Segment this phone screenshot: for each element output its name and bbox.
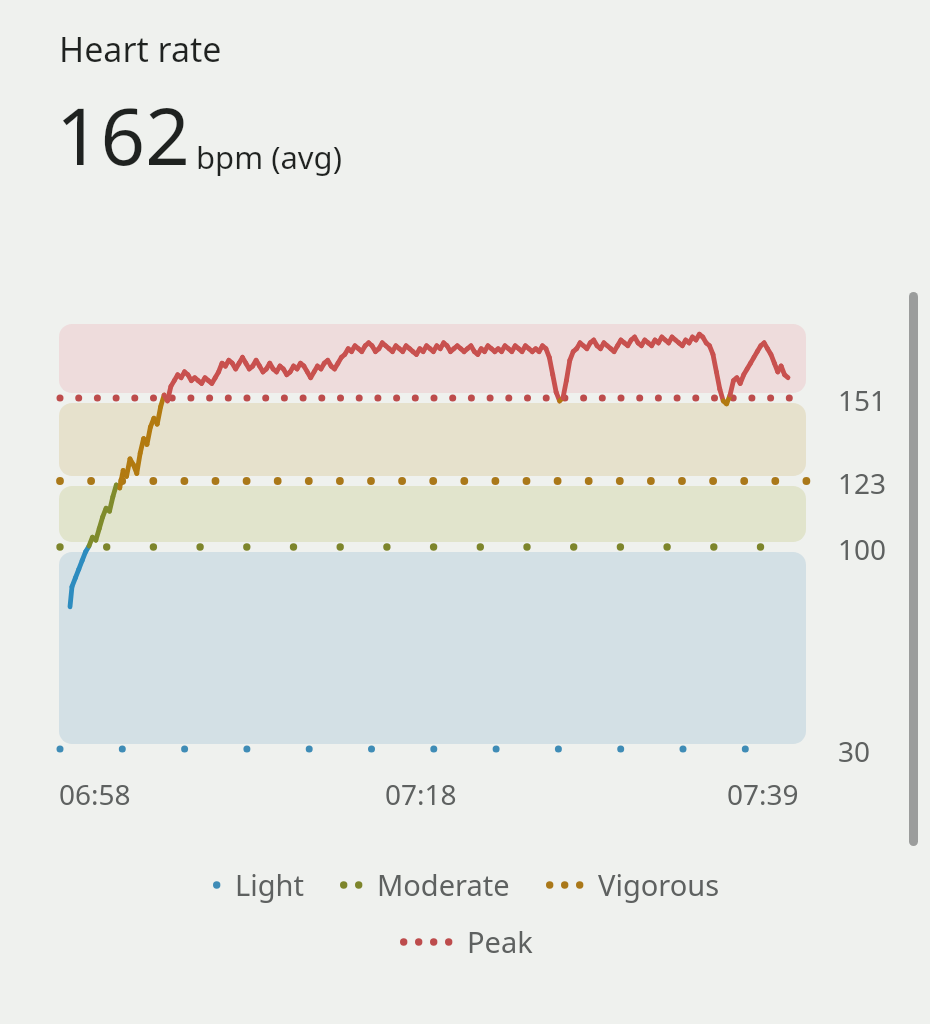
staticText: Vigorous bbox=[598, 865, 720, 904]
staticText: 162 bbox=[56, 82, 190, 188]
staticText: 06:58 bbox=[59, 775, 131, 813]
staticText: Light bbox=[235, 865, 304, 904]
staticText: 07:18 bbox=[385, 775, 457, 813]
staticText: 123 bbox=[838, 464, 887, 502]
staticText: Moderate bbox=[377, 865, 510, 904]
staticText: 100 bbox=[838, 530, 887, 568]
button[interactable]: Vigorous bbox=[542, 862, 722, 907]
staticText: Heart rate bbox=[59, 26, 222, 72]
staticText: bpm (avg) bbox=[196, 136, 342, 178]
staticText: 07:39 bbox=[727, 775, 799, 813]
staticText: 30 bbox=[838, 732, 871, 770]
button[interactable]: Light bbox=[209, 862, 306, 907]
staticText: Peak bbox=[467, 922, 533, 961]
button[interactable]: Moderate bbox=[336, 862, 512, 907]
staticText: 151 bbox=[838, 381, 887, 419]
button[interactable]: Peak bbox=[396, 919, 535, 964]
